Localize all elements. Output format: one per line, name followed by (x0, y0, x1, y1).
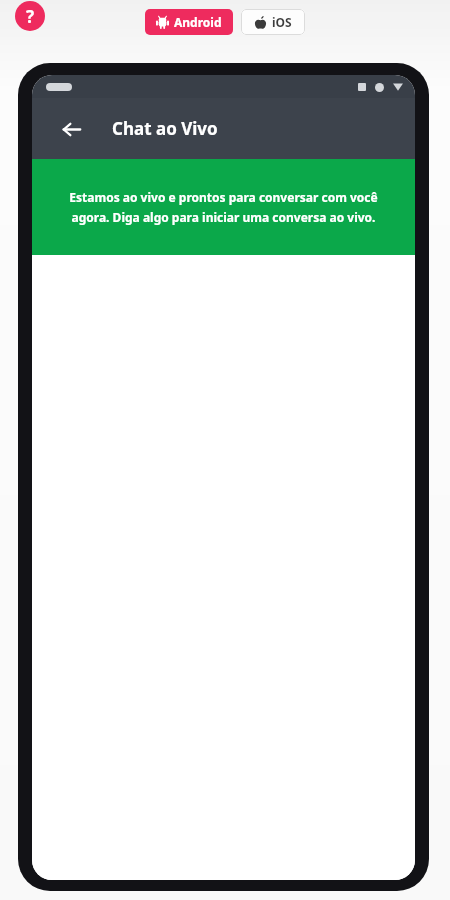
button[interactable]: Android (145, 9, 233, 35)
staticText: Estamos ao vivo e prontos para conversar… (58, 189, 389, 225)
staticText: Android (174, 14, 222, 30)
staticText: Chat ao Vivo (112, 117, 218, 140)
button[interactable]: Back (54, 112, 88, 146)
staticText: ? (26, 5, 35, 28)
button[interactable]: iOS (241, 9, 305, 35)
staticText: iOS (272, 14, 292, 30)
button[interactable]: Help (15, 1, 45, 31)
